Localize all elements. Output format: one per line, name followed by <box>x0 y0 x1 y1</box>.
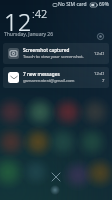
staticText: 12:41 <box>94 51 105 57</box>
button[interactable]: Screenshot captured <box>3 43 109 64</box>
staticText: Touch to view your screenshot. <box>23 54 84 60</box>
button[interactable]: Notification settings <box>94 30 107 43</box>
staticText: gsmarenatest@gmail.com <box>23 78 75 84</box>
staticText: 12 <box>4 5 32 38</box>
staticText: :42 <box>32 6 48 21</box>
staticText: 69% <box>99 1 109 8</box>
staticText: No SIM card <box>58 1 87 8</box>
staticText: Screenshot captured <box>23 47 70 53</box>
staticText: 7 new messages <box>23 71 60 77</box>
staticText: Thursday, January 26 <box>4 31 54 38</box>
staticText: 12:41 <box>94 71 105 77</box>
button[interactable]: 7 new messages <box>3 67 109 88</box>
staticText: 7 <box>102 78 105 84</box>
button[interactable]: Clear all notifications <box>46 167 66 187</box>
